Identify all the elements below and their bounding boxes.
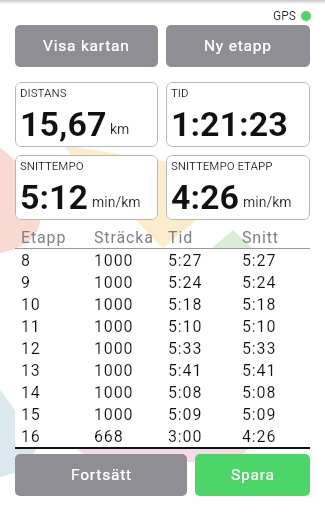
staticText: SNITTEMPO ETAPP	[171, 159, 273, 172]
button[interactable]: Spara	[195, 454, 310, 496]
staticText: 5:08	[242, 383, 310, 402]
staticText: Ny etapp	[204, 37, 272, 55]
staticText: 5:08	[168, 383, 236, 402]
staticText: 5:09	[168, 405, 236, 424]
staticText: 5:10	[168, 317, 236, 336]
staticText: 1000	[94, 317, 162, 336]
staticText: DISTANS	[20, 86, 67, 99]
button[interactable]: 14	[15, 381, 310, 403]
button[interactable]: 11	[15, 315, 310, 337]
staticText: Visa kartan	[43, 37, 130, 55]
staticText: 5:12	[20, 177, 89, 217]
button[interactable]: 12	[15, 337, 310, 359]
button[interactable]: 15	[15, 403, 310, 425]
button[interactable]: 16	[15, 425, 310, 447]
button[interactable]: 8	[15, 249, 310, 271]
staticText: Sträcka	[94, 228, 162, 247]
staticText: 1000	[94, 361, 162, 380]
staticText: 10	[21, 295, 88, 314]
button[interactable]: Ny etapp	[166, 25, 310, 67]
staticText: 13	[21, 361, 88, 380]
staticText: 9	[21, 273, 88, 292]
staticText: 5:10	[242, 317, 310, 336]
staticText: 12	[21, 339, 88, 358]
staticText: min/km	[243, 194, 292, 210]
button[interactable]: Visa kartan	[15, 25, 158, 67]
staticText: 5:18	[242, 295, 310, 314]
button[interactable]: 13	[15, 359, 310, 381]
staticText: 15	[21, 405, 88, 424]
staticText: 4:26	[242, 427, 310, 446]
staticText: 1000	[94, 339, 162, 358]
staticText: 14	[21, 383, 88, 402]
staticText: 5:41	[242, 361, 310, 380]
staticText: 1000	[94, 383, 162, 402]
staticText: SNITTEMPO	[20, 159, 84, 172]
staticText: 5:27	[168, 251, 236, 270]
staticText: 5:18	[168, 295, 236, 314]
button[interactable]: 9	[15, 271, 310, 293]
staticText: 3:00	[168, 427, 236, 446]
button[interactable]: Fortsätt	[15, 454, 187, 496]
staticText: 5:41	[168, 361, 236, 380]
staticText: 5:33	[168, 339, 236, 358]
staticText: Fortsätt	[71, 466, 132, 484]
staticText: 1:21:23	[171, 104, 288, 144]
staticText: 1000	[94, 295, 162, 314]
staticText: 668	[94, 427, 162, 446]
staticText: 4:26	[171, 177, 240, 217]
staticText: 1000	[94, 405, 162, 424]
staticText: GPS	[273, 9, 296, 23]
staticText: 5:33	[242, 339, 310, 358]
staticText: 15,67	[20, 104, 107, 144]
staticText: 5:24	[242, 273, 310, 292]
staticText: 11	[21, 317, 88, 336]
staticText: 5:27	[242, 251, 310, 270]
staticText: min/km	[92, 194, 141, 210]
staticText: 5:24	[168, 273, 236, 292]
staticText: Spara	[231, 466, 275, 484]
staticText: km	[110, 121, 130, 137]
button[interactable]: 10	[15, 293, 310, 315]
staticText: Tid	[168, 228, 236, 247]
staticText: 5:09	[242, 405, 310, 424]
staticText: Snitt	[242, 228, 310, 247]
staticText: 8	[21, 251, 88, 270]
staticText: 16	[21, 427, 88, 446]
staticText: 1000	[94, 251, 162, 270]
staticText: TID	[171, 86, 189, 99]
staticText: 1000	[94, 273, 162, 292]
staticText: Etapp	[21, 228, 88, 247]
